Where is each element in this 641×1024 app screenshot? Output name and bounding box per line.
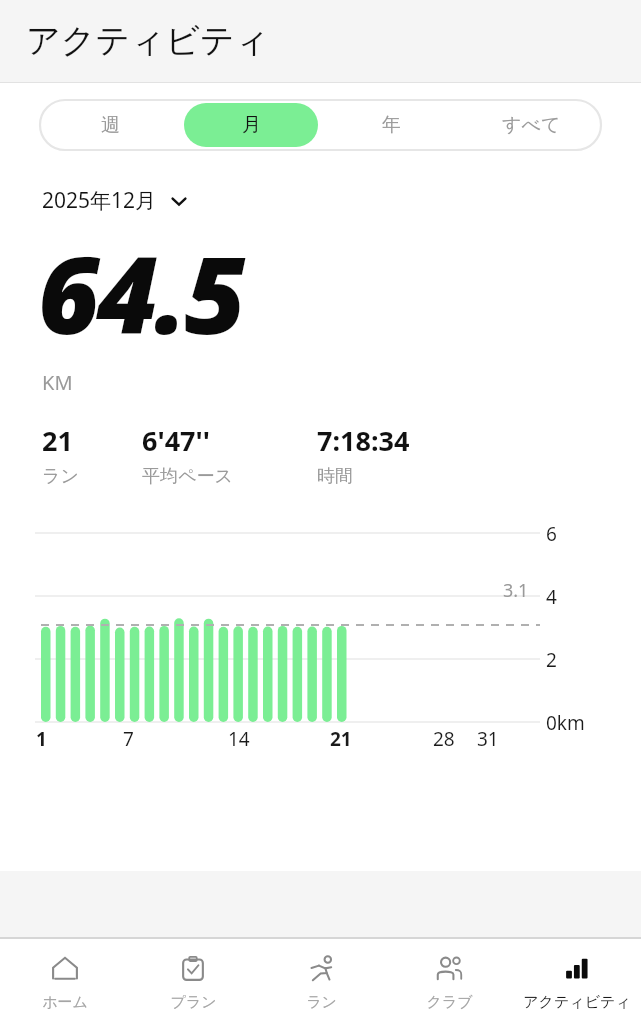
staticText: 2025年12月 <box>42 186 157 215</box>
staticText: ホーム <box>42 993 88 1012</box>
staticText: 2 <box>546 647 557 673</box>
staticText: KM <box>42 369 73 396</box>
staticText: 6'47'' <box>142 422 210 459</box>
staticText: 0km <box>546 710 585 736</box>
staticText: 7:18:34 <box>317 422 410 459</box>
staticText: 3.1 <box>503 578 529 603</box>
staticText: ラン <box>42 465 79 488</box>
button[interactable]: ホーム <box>0 939 129 1024</box>
staticText: 6 <box>546 521 557 547</box>
button[interactable]: すべて <box>464 103 598 147</box>
button[interactable]: アクティビティ <box>513 939 641 1024</box>
staticText: アクティビティ <box>26 19 270 62</box>
staticText: アクティビティ <box>523 993 631 1012</box>
staticText: クラブ <box>426 993 473 1012</box>
button[interactable]: プラン <box>129 939 257 1024</box>
staticText: 64.5 <box>38 221 243 365</box>
staticText: 月 <box>242 113 261 137</box>
staticText: 1 <box>36 726 47 752</box>
button[interactable]: 年 <box>324 103 458 147</box>
staticText: 14 <box>228 726 250 752</box>
staticText: ラン <box>306 993 337 1012</box>
staticText: 時間 <box>317 465 353 488</box>
staticText: 28 <box>433 726 455 752</box>
staticText: 7 <box>123 726 134 752</box>
button[interactable]: クラブ <box>385 939 513 1024</box>
staticText: 21 <box>42 422 73 459</box>
staticText: プラン <box>170 993 217 1012</box>
staticText: 平均ペース <box>142 465 233 488</box>
button[interactable]: 月 <box>184 103 318 147</box>
staticText: 21 <box>330 726 352 752</box>
staticText: 4 <box>546 584 557 610</box>
staticText: 年 <box>382 113 401 137</box>
button[interactable]: ラン <box>257 939 385 1024</box>
staticText: すべて <box>502 113 561 137</box>
staticText: 週 <box>101 113 120 137</box>
staticText: 31 <box>477 726 499 752</box>
button[interactable]: 週 <box>43 103 178 147</box>
button[interactable]: 2025年12月 <box>42 186 189 215</box>
